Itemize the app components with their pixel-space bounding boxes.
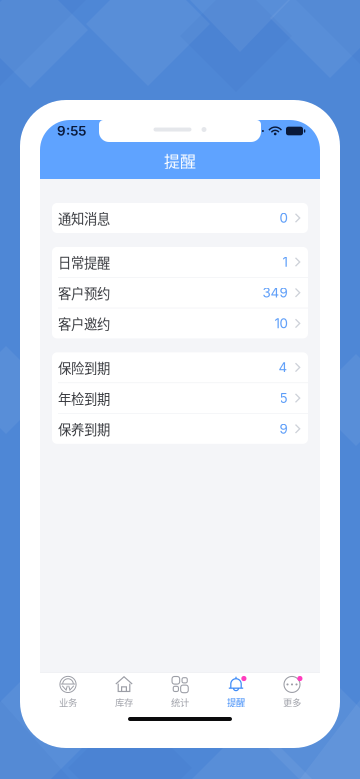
staticText: 保养到期 bbox=[58, 419, 110, 438]
staticText: 客户邀约 bbox=[58, 314, 110, 333]
button[interactable]: 库存 bbox=[96, 670, 152, 713]
button[interactable]: 提醒 bbox=[208, 670, 264, 713]
button[interactable]: 客户预约 bbox=[52, 278, 308, 308]
button[interactable]: 保险到期 bbox=[52, 352, 308, 382]
button[interactable]: 更多 bbox=[264, 670, 320, 713]
button[interactable]: 统计 bbox=[152, 670, 208, 713]
staticText: 更多 bbox=[283, 695, 301, 709]
staticText: 9:55 bbox=[57, 123, 86, 139]
staticText: 9 bbox=[279, 421, 287, 437]
staticText: 保险到期 bbox=[58, 358, 110, 377]
button[interactable]: 年检到期 bbox=[52, 383, 308, 413]
staticText: 349 bbox=[262, 285, 287, 301]
button[interactable]: 保养到期 bbox=[52, 414, 308, 444]
button[interactable]: 业务 bbox=[40, 670, 96, 713]
staticText: 客户预约 bbox=[58, 283, 110, 302]
staticText: 0 bbox=[279, 210, 287, 226]
button[interactable]: 客户邀约 bbox=[52, 308, 308, 338]
staticText: 统计 bbox=[171, 695, 189, 709]
button[interactable]: 日常提醒 bbox=[52, 247, 308, 277]
staticText: 5 bbox=[279, 390, 287, 406]
staticText: 1 bbox=[282, 254, 287, 270]
button[interactable]: 通知消息 bbox=[52, 203, 308, 233]
staticText: 4 bbox=[278, 359, 287, 375]
staticText: 通知消息 bbox=[58, 208, 110, 228]
staticText: 提醒 bbox=[227, 695, 245, 709]
staticText: 日常提醒 bbox=[58, 252, 110, 272]
staticText: 年检到期 bbox=[58, 388, 110, 408]
staticText: 业务 bbox=[59, 695, 77, 709]
staticText: 提醒 bbox=[164, 149, 196, 172]
staticText: 10 bbox=[274, 315, 287, 331]
staticText: 库存 bbox=[115, 695, 133, 709]
